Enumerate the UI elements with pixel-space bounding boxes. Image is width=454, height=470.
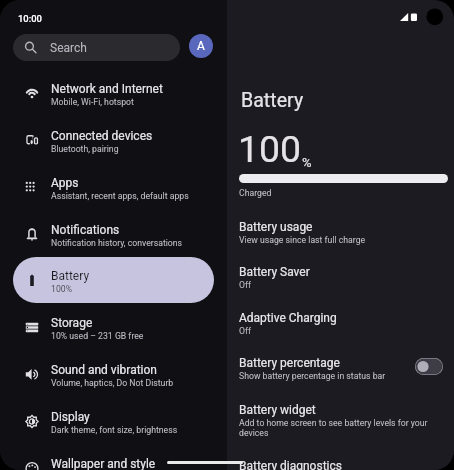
button[interactable]: Search	[13, 34, 180, 61]
staticText: Mobile, Wi-Fi, hotspot	[51, 97, 134, 107]
staticText: 10% used – 231 GB free	[51, 331, 144, 341]
button[interactable]: Battery diagnostics	[227, 459, 454, 470]
button[interactable]: Apps	[0, 165, 227, 212]
button[interactable]: Sound and vibration	[0, 352, 227, 399]
staticText: Off	[239, 326, 252, 336]
staticText: Display	[51, 410, 90, 424]
staticText: Add to home screen to see battery levels…	[239, 418, 443, 438]
staticText: Assistant, recent apps, default apps	[51, 191, 189, 201]
staticText: Search	[50, 41, 87, 55]
staticText: Sound and vibration	[51, 363, 157, 377]
staticText: Charged	[239, 188, 272, 198]
staticText: Battery	[51, 269, 90, 283]
staticText: Volume, haptics, Do Not Disturb	[51, 378, 174, 388]
button[interactable]: Wallpaper and style	[0, 446, 227, 470]
staticText: 100%	[51, 284, 73, 294]
staticText: Battery widget	[239, 403, 316, 417]
staticText: Battery usage	[239, 220, 313, 234]
button[interactable]	[13, 257, 214, 303]
button[interactable]: Display	[0, 399, 227, 446]
staticText: Battery	[241, 89, 304, 112]
button[interactable]: Adaptive Charging	[227, 311, 454, 336]
button[interactable]: Battery Saver	[227, 265, 454, 290]
staticText: Apps	[51, 176, 79, 190]
staticText: Notification history, conversations	[51, 238, 183, 248]
staticText: Notifications	[51, 223, 120, 237]
staticText: Show battery percentage in status bar	[239, 371, 386, 381]
staticText: Off	[239, 280, 252, 290]
staticText: Battery Saver	[239, 265, 310, 279]
button[interactable]: Network and Internet	[0, 71, 227, 118]
staticText: Bluetooth, pairing	[51, 144, 119, 154]
staticText: Dark theme, font size, brightness	[51, 425, 178, 435]
button[interactable]: Battery percentage toggle	[415, 358, 443, 375]
button[interactable]: Notifications	[0, 212, 227, 259]
staticText: Battery diagnostics	[239, 459, 342, 470]
staticText: A	[197, 39, 205, 53]
staticText: Battery percentage	[239, 356, 340, 370]
button[interactable]: Connected devices	[0, 118, 227, 165]
staticText: 10:00	[18, 13, 42, 24]
staticText: Wallpaper and style	[51, 457, 156, 470]
button[interactable]: Storage	[0, 305, 227, 352]
staticText: %	[302, 155, 312, 170]
staticText: Network and Internet	[51, 82, 163, 96]
staticText: Connected devices	[51, 129, 153, 143]
staticText: Storage	[51, 316, 93, 330]
button[interactable]: Account	[189, 34, 213, 58]
button[interactable]: Battery percentage	[227, 356, 454, 381]
staticText: View usage since last full charge	[239, 235, 366, 245]
button[interactable]: Battery usage	[227, 220, 454, 245]
button[interactable]: Battery widget	[227, 403, 454, 438]
staticText: Adaptive Charging	[239, 311, 337, 325]
staticText: 100	[238, 127, 302, 171]
